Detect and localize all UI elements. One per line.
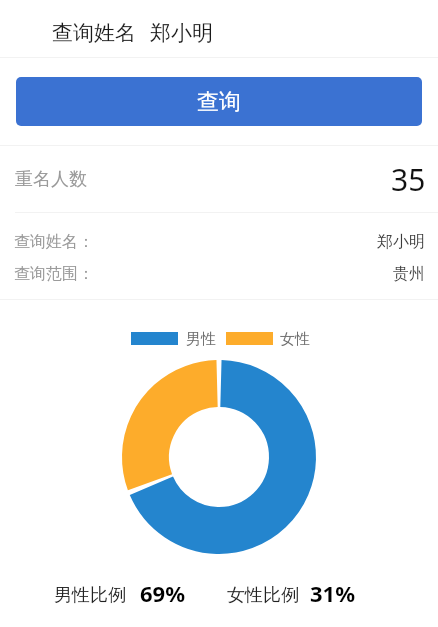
staticText: 69% bbox=[140, 578, 186, 602]
staticText: 女性 bbox=[280, 330, 310, 347]
staticText: 郑小明 bbox=[150, 20, 213, 46]
staticText: 查询姓名： bbox=[14, 232, 94, 252]
button[interactable]: 重名人数 bbox=[0, 146, 438, 212]
staticText: 31% bbox=[310, 578, 356, 602]
staticText: 重名人数 bbox=[15, 168, 87, 191]
button[interactable]: 查询姓名 bbox=[0, 0, 438, 57]
other: 男女比例环形图 男性69% 女性31% bbox=[122, 360, 316, 554]
staticText: 郑小明 bbox=[377, 232, 425, 252]
staticText: 查询范围： bbox=[14, 264, 94, 284]
button[interactable]: 查询姓名： bbox=[0, 230, 438, 254]
staticText: 女性比例 bbox=[227, 584, 299, 607]
button[interactable]: 查询范围： bbox=[0, 262, 438, 286]
staticText: 35 bbox=[391, 159, 426, 200]
staticText: 查询姓名 bbox=[52, 20, 136, 46]
staticText: 男性比例 bbox=[54, 584, 126, 607]
staticText: 贵州 bbox=[393, 264, 425, 284]
button[interactable]: 查询 bbox=[16, 77, 422, 126]
staticText: 男性 bbox=[186, 330, 216, 347]
staticText: 查询 bbox=[197, 88, 241, 116]
